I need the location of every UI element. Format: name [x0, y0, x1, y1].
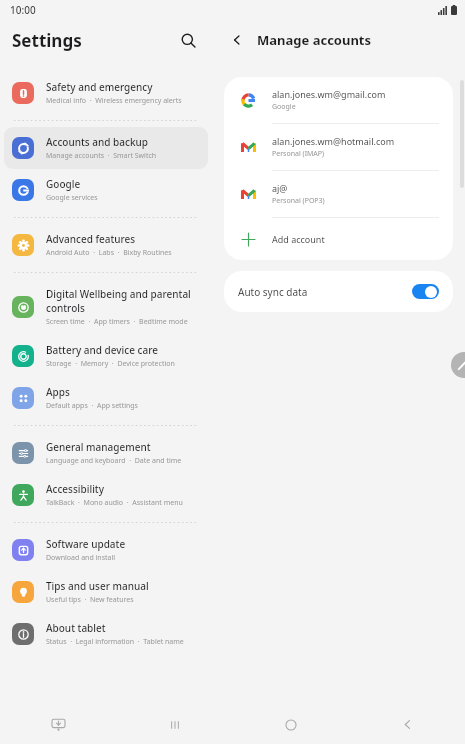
- staticText: Accounts and backup: [46, 135, 148, 149]
- button[interactable]: alan.jones.wm@hotmail.com: [224, 124, 453, 170]
- staticText: Settings: [12, 29, 82, 52]
- button[interactable]: About tablet: [4, 613, 208, 655]
- staticText: Advanced features: [46, 232, 136, 246]
- staticText: General management: [46, 440, 151, 454]
- button[interactable]: General management: [4, 432, 208, 474]
- button[interactable]: Add account: [224, 218, 453, 260]
- button[interactable]: Google: [4, 169, 208, 211]
- staticText: Download and install: [46, 553, 116, 563]
- staticText: Auto sync data: [238, 285, 412, 299]
- staticText: Manage accounts · Smart Switch: [46, 151, 157, 161]
- button[interactable]: Software update: [4, 529, 208, 571]
- staticText: Manage accounts: [257, 31, 372, 49]
- staticText: About tablet: [46, 621, 106, 635]
- button[interactable]: Accessibility: [4, 474, 208, 516]
- staticText: Apps: [46, 385, 70, 399]
- staticText: 10:00: [10, 3, 36, 17]
- staticText: Storage · Memory · Device protection: [46, 359, 175, 369]
- staticText: Android Auto · Labs · Bixby Routines: [46, 248, 172, 258]
- button[interactable]: Home: [233, 705, 349, 744]
- button[interactable]: Edit: [451, 352, 465, 378]
- button[interactable]: Accounts and backup: [4, 127, 208, 169]
- staticText: Personal (IMAP): [272, 149, 325, 159]
- button[interactable]: Auto sync data: [224, 271, 453, 312]
- button[interactable]: Back: [224, 27, 250, 53]
- button[interactable]: Search: [174, 26, 202, 54]
- staticText: Tips and user manual: [46, 579, 149, 593]
- staticText: Digital Wellbeing and parental controls: [46, 287, 202, 315]
- staticText: aj@: [272, 182, 288, 194]
- staticText: Google: [272, 102, 296, 112]
- staticText: alan.jones.wm@hotmail.com: [272, 135, 395, 147]
- button[interactable]: Recents: [117, 705, 233, 744]
- staticText: Add account: [272, 233, 325, 245]
- staticText: Google: [46, 177, 81, 191]
- button[interactable]: Tips and user manual: [4, 571, 208, 613]
- button[interactable]: Digital Wellbeing and parental controls: [4, 279, 208, 335]
- staticText: Status · Legal information · Tablet name: [46, 637, 184, 647]
- staticText: Battery and device care: [46, 343, 158, 357]
- staticText: Google services: [46, 193, 98, 203]
- staticText: TalkBack · Mono audio · Assistant menu: [46, 498, 183, 508]
- button[interactable]: alan.jones.wm@gmail.com: [224, 77, 453, 123]
- staticText: Medical info · Wireless emergency alerts: [46, 96, 182, 106]
- button[interactable]: Apps: [4, 377, 208, 419]
- staticText: Software update: [46, 537, 126, 551]
- staticText: Default apps · App settings: [46, 401, 138, 411]
- staticText: Screen time · App timers · Bedtime mode: [46, 317, 188, 327]
- button[interactable]: Back: [349, 705, 465, 744]
- button[interactable]: Advanced features: [4, 224, 208, 266]
- staticText: alan.jones.wm@gmail.com: [272, 88, 386, 100]
- button[interactable]: aj@: [224, 171, 453, 217]
- staticText: Accessibility: [46, 482, 104, 496]
- button[interactable]: Battery and device care: [4, 335, 208, 377]
- staticText: Language and keyboard · Date and time: [46, 456, 182, 466]
- button[interactable]: Hide keyboard: [0, 705, 117, 744]
- staticText: Safety and emergency: [46, 80, 153, 94]
- button[interactable]: Safety and emergency: [4, 72, 208, 114]
- staticText: Personal (POP3): [272, 196, 325, 206]
- staticText: Useful tips · New features: [46, 595, 134, 605]
